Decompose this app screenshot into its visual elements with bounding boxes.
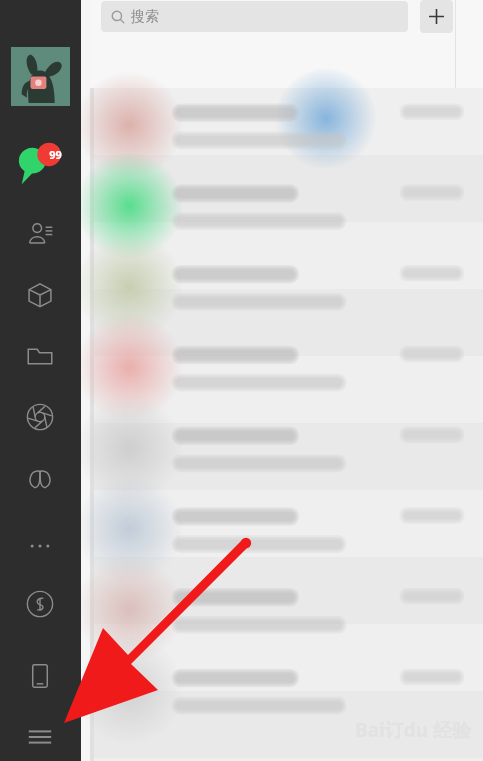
staticText: 99	[49, 147, 62, 162]
button[interactable]: More	[16, 522, 64, 570]
button[interactable]: Chats	[16, 140, 64, 188]
button[interactable]: Channels	[16, 393, 64, 441]
button[interactable]: Favorites	[16, 271, 64, 319]
staticText: 搜索	[131, 8, 159, 26]
button[interactable]: Phone	[16, 652, 64, 700]
button[interactable]: 搜索	[101, 1, 408, 32]
button[interactable]: Menu	[16, 713, 64, 761]
button[interactable]: Profile	[11, 47, 70, 106]
button[interactable]: Files	[16, 332, 64, 380]
button[interactable]: New chat	[420, 0, 453, 33]
button[interactable]: Contacts	[16, 210, 64, 258]
button[interactable]: Top Stories	[16, 455, 64, 503]
button[interactable]: Mini Programs	[16, 580, 64, 628]
